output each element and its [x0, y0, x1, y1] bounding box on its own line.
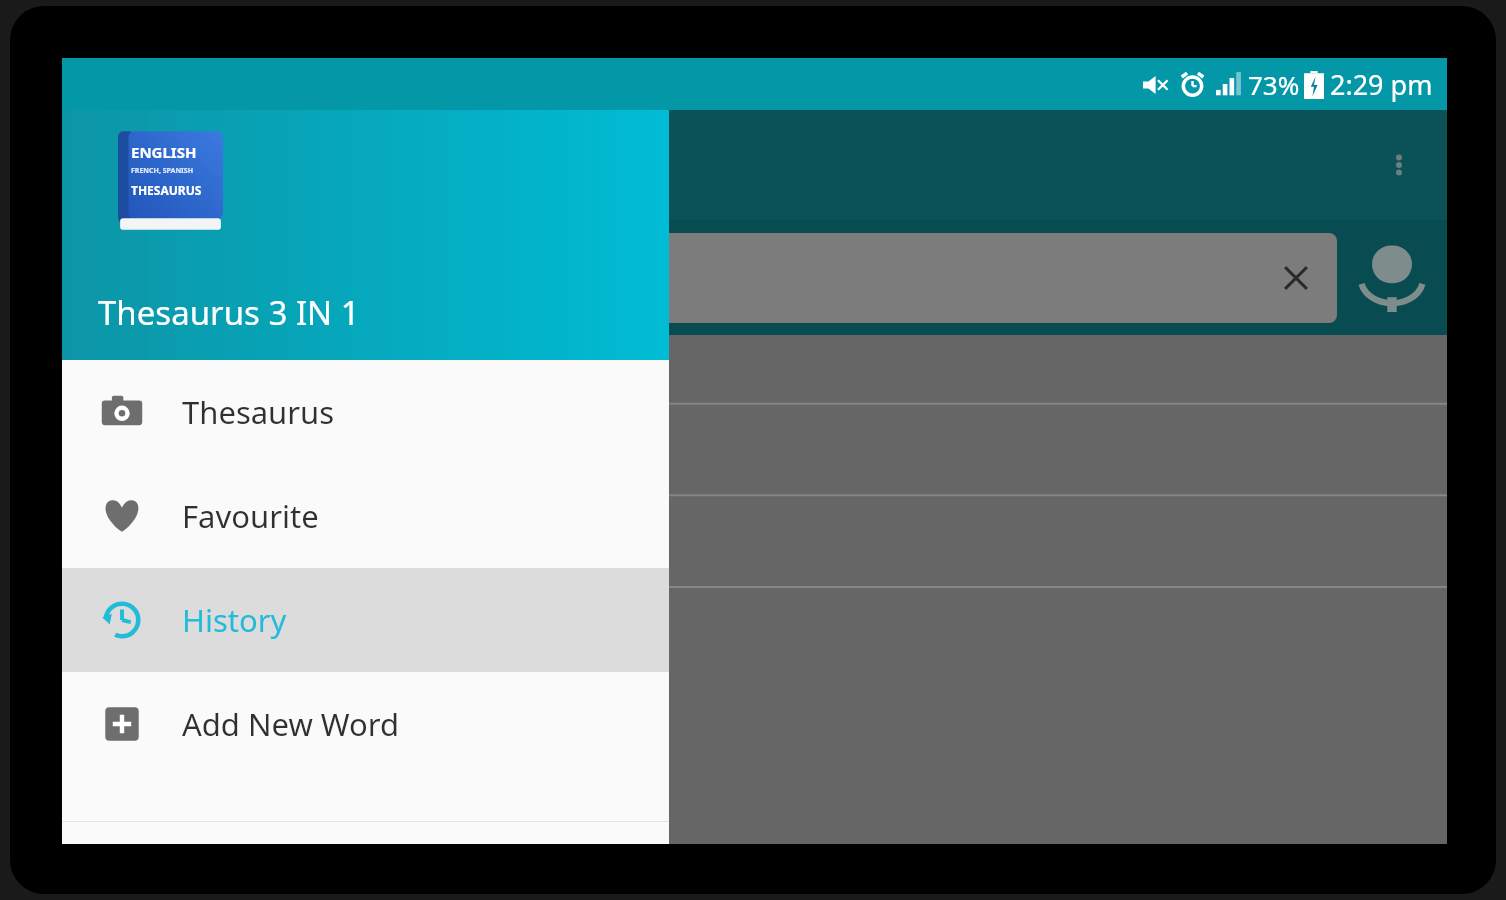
- button[interactable]: Thesaurus: [62, 360, 669, 464]
- button[interactable]: Clear search: [1279, 261, 1313, 295]
- staticText: Thesaurus: [182, 391, 335, 433]
- staticText: 2:29 pm: [1330, 66, 1433, 103]
- staticText: FRENCH, SPANISH: [131, 166, 194, 176]
- button[interactable]: Clear search: [86, 233, 1337, 323]
- button[interactable]: More options: [1379, 145, 1419, 185]
- button[interactable]: Add New Word: [62, 672, 669, 776]
- staticText: 73%: [1248, 67, 1300, 102]
- staticText: Thesaurus 3 IN 1: [98, 290, 360, 335]
- staticText: THESAURUS: [131, 182, 202, 198]
- button[interactable]: History: [62, 568, 669, 672]
- staticText: History: [182, 599, 287, 641]
- button[interactable]: Voice search: [1337, 223, 1447, 333]
- staticText: Favourite: [182, 495, 319, 537]
- button[interactable]: Favourite: [62, 464, 669, 568]
- staticText: Add New Word: [182, 703, 400, 745]
- staticText: ENGLISH: [131, 142, 197, 162]
